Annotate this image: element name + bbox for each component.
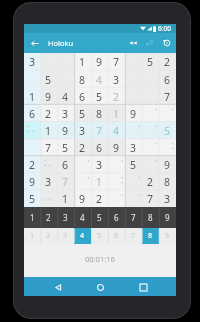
button[interactable]: 7 bbox=[57, 173, 74, 190]
button[interactable]: 5 bbox=[125, 156, 142, 173]
button[interactable]: 5 bbox=[91, 88, 108, 105]
button[interactable] bbox=[108, 156, 125, 173]
button[interactable]: 6 bbox=[91, 139, 108, 156]
button[interactable]: 7 bbox=[125, 228, 142, 244]
button[interactable]: Restart bbox=[158, 33, 175, 53]
button[interactable]: Back bbox=[49, 278, 67, 296]
button[interactable]: Undo bbox=[125, 33, 141, 53]
button[interactable]: Recents bbox=[134, 278, 152, 296]
button[interactable] bbox=[142, 105, 159, 122]
button[interactable]: 9 bbox=[159, 207, 176, 228]
button[interactable] bbox=[142, 122, 159, 139]
button[interactable] bbox=[142, 139, 159, 156]
button[interactable]: 1 bbox=[24, 228, 40, 244]
button[interactable]: 8 bbox=[142, 207, 159, 228]
button[interactable]: 4 bbox=[108, 122, 125, 139]
button[interactable]: 7 bbox=[108, 53, 125, 71]
button[interactable]: 2 bbox=[40, 228, 57, 244]
button[interactable]: 2 bbox=[91, 190, 108, 207]
button[interactable]: 6 bbox=[74, 88, 91, 105]
button[interactable]: 2 bbox=[24, 156, 40, 173]
button[interactable]: 1 bbox=[24, 88, 40, 105]
button[interactable]: 2 bbox=[159, 53, 176, 71]
button[interactable]: 9 bbox=[125, 105, 142, 122]
button[interactable]: 9 bbox=[108, 139, 125, 156]
button[interactable]: 5 bbox=[159, 122, 176, 139]
button[interactable] bbox=[125, 190, 142, 207]
button[interactable]: Pencil notes bbox=[141, 33, 158, 53]
button[interactable]: 2 bbox=[40, 105, 57, 122]
button[interactable]: 9 bbox=[159, 228, 176, 244]
button[interactable] bbox=[74, 173, 91, 190]
button[interactable]: 2 bbox=[74, 139, 91, 156]
button[interactable]: 3 bbox=[91, 156, 108, 173]
button[interactable]: 6 bbox=[159, 71, 176, 88]
button[interactable]: 8 bbox=[74, 71, 91, 88]
button[interactable]: 9 bbox=[91, 53, 108, 71]
button[interactable]: 7 bbox=[40, 139, 57, 156]
button[interactable] bbox=[125, 122, 142, 139]
button[interactable]: 3 bbox=[108, 71, 125, 88]
button[interactable]: 9 bbox=[40, 88, 57, 105]
button[interactable]: 5 bbox=[91, 228, 108, 244]
button[interactable] bbox=[142, 88, 159, 105]
button[interactable] bbox=[125, 88, 142, 105]
button[interactable]: Home bbox=[91, 278, 109, 296]
button[interactable]: 7 bbox=[142, 190, 159, 207]
button[interactable]: 8 bbox=[91, 105, 108, 122]
button[interactable]: 5 bbox=[24, 190, 40, 207]
button[interactable]: 7 bbox=[125, 207, 142, 228]
button[interactable]: 7 bbox=[159, 88, 176, 105]
button[interactable]: 3 bbox=[57, 207, 74, 228]
button[interactable]: 1 bbox=[91, 173, 108, 190]
button[interactable]: 6 bbox=[108, 207, 125, 228]
button[interactable]: 8 bbox=[159, 173, 176, 190]
button[interactable]: 4 bbox=[91, 71, 108, 88]
button[interactable] bbox=[125, 71, 142, 88]
button[interactable]: 3 bbox=[159, 190, 176, 207]
button[interactable]: 8 bbox=[142, 228, 159, 244]
button[interactable]: 1 bbox=[74, 53, 91, 71]
button[interactable]: 3 bbox=[125, 139, 142, 156]
button[interactable]: 7 bbox=[91, 122, 108, 139]
button[interactable]: 4 bbox=[74, 228, 91, 244]
button[interactable] bbox=[40, 190, 57, 207]
button[interactable] bbox=[40, 156, 57, 173]
button[interactable] bbox=[125, 53, 142, 71]
button[interactable]: 9 bbox=[74, 190, 91, 207]
button[interactable] bbox=[74, 156, 91, 173]
button[interactable] bbox=[159, 139, 176, 156]
button[interactable]: 5 bbox=[142, 53, 159, 71]
button[interactable]: 6 bbox=[108, 228, 125, 244]
button[interactable]: 3 bbox=[57, 105, 74, 122]
button[interactable]: 3 bbox=[57, 228, 74, 244]
button[interactable]: 5 bbox=[40, 71, 57, 88]
button[interactable] bbox=[24, 139, 40, 156]
button[interactable]: 4 bbox=[57, 88, 74, 105]
button[interactable]: 3 bbox=[74, 122, 91, 139]
button[interactable] bbox=[108, 173, 125, 190]
button[interactable]: 5 bbox=[74, 105, 91, 122]
button[interactable]: 2 bbox=[142, 173, 159, 190]
button[interactable] bbox=[125, 173, 142, 190]
button[interactable] bbox=[24, 122, 40, 139]
button[interactable]: 1 bbox=[24, 207, 40, 228]
button[interactable]: 9 bbox=[159, 156, 176, 173]
button[interactable]: Back bbox=[28, 33, 41, 53]
button[interactable]: 9 bbox=[24, 173, 40, 190]
button[interactable]: 1 bbox=[57, 190, 74, 207]
button[interactable]: 3 bbox=[24, 53, 40, 71]
button[interactable]: 9 bbox=[57, 122, 74, 139]
button[interactable]: 6 bbox=[24, 105, 40, 122]
button[interactable]: 1 bbox=[40, 122, 57, 139]
button[interactable]: 6 bbox=[57, 156, 74, 173]
button[interactable]: 4 bbox=[74, 207, 91, 228]
button[interactable]: 5 bbox=[57, 139, 74, 156]
button[interactable]: 3 bbox=[40, 173, 57, 190]
button[interactable]: 1 bbox=[108, 105, 125, 122]
